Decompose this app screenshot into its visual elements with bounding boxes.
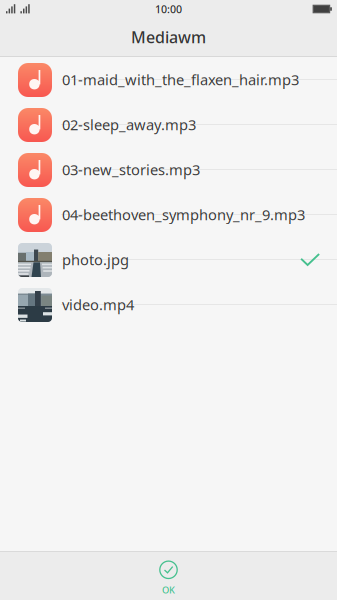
staticText: 01-maid_with_the_flaxen_hair.mp3 xyxy=(62,70,299,89)
staticText: Mediawm xyxy=(131,26,206,48)
button[interactable]: 02-sleep_away.mp3 xyxy=(0,102,337,147)
staticText: 02-sleep_away.mp3 xyxy=(62,115,196,134)
button[interactable]: 04-beethoven_symphony_nr_9.mp3 xyxy=(0,192,337,237)
staticText: photo.jpg xyxy=(62,250,129,269)
button[interactable]: OK xyxy=(159,556,178,596)
button[interactable]: video.mp4 xyxy=(0,282,337,327)
staticText: OK xyxy=(162,584,175,596)
button[interactable]: 03-new_stories.mp3 xyxy=(0,147,337,192)
staticText: 10:00 xyxy=(155,2,182,16)
staticText: 03-new_stories.mp3 xyxy=(62,160,200,179)
button[interactable]: 01-maid_with_the_flaxen_hair.mp3 xyxy=(0,57,337,102)
staticText: video.mp4 xyxy=(62,295,134,314)
staticText: 04-beethoven_symphony_nr_9.mp3 xyxy=(62,205,305,224)
button[interactable]: photo.jpg xyxy=(0,237,337,282)
